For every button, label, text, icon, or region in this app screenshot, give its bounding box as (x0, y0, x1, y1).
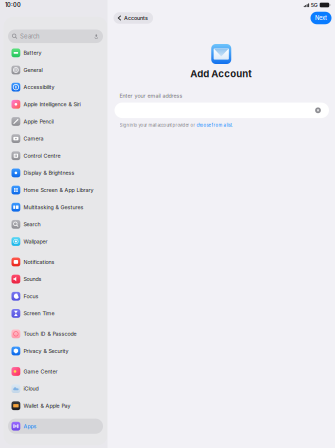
staticText: Next (315, 14, 327, 21)
staticText: Apps (23, 423, 36, 429)
button[interactable]: Search (8, 30, 103, 43)
button[interactable]: Home Screen & App Library (8, 182, 103, 198)
button[interactable]: Accessibility (8, 79, 103, 95)
button[interactable]: Sounds (8, 271, 103, 287)
staticText: Touch ID & Passcode (23, 331, 76, 337)
staticText: Apple Pencil (23, 118, 53, 125)
button[interactable]: Wallpaper (8, 234, 103, 249)
staticText: choose from a list. (196, 123, 232, 128)
staticText: General (23, 67, 42, 73)
button[interactable]: Next (310, 12, 331, 24)
button[interactable]: Touch ID & Passcode (8, 326, 103, 341)
button[interactable]: Clear text (314, 106, 322, 114)
staticText: Wallpaper (23, 238, 47, 245)
button[interactable]: Notifications (8, 254, 103, 270)
button[interactable]: Search (8, 217, 103, 232)
staticText: Search (20, 33, 40, 40)
staticText: Focus (23, 293, 38, 299)
staticText: Apple Intelligence & Siri (23, 101, 80, 108)
staticText: Enter your email address (119, 93, 182, 99)
button[interactable]: Focus (8, 289, 103, 304)
staticText: Wallet & Apple Pay (23, 402, 70, 409)
button[interactable]: Apple Intelligence & Siri (8, 97, 103, 112)
staticText: Accessibility (23, 84, 54, 90)
button[interactable]: iCloud (8, 381, 103, 396)
button[interactable]: Game Center (8, 364, 103, 379)
staticText: Home Screen & App Library (23, 187, 93, 193)
staticText: Add Account (190, 68, 252, 80)
staticText: Camera (23, 135, 43, 142)
staticText: 5G (311, 2, 318, 8)
button[interactable]: Battery (8, 45, 103, 60)
button[interactable]: Control Centre (8, 148, 103, 163)
staticText: Display & Brightness (23, 170, 74, 176)
button[interactable]: Camera (8, 131, 103, 146)
staticText: Screen Time (23, 310, 54, 317)
staticText: Sign in to your mail account provider or (119, 123, 196, 128)
staticText: iCloud (23, 385, 38, 392)
button[interactable]: Privacy & Security (8, 343, 103, 359)
button[interactable]: choose from a list. (196, 123, 232, 128)
staticText: Accounts (124, 15, 148, 21)
staticText: Sounds (23, 276, 41, 282)
staticText: 10:00 (5, 2, 21, 8)
staticText: Battery (23, 50, 41, 56)
button[interactable]: Screen Time (8, 306, 103, 321)
button[interactable]: Apps (8, 419, 103, 434)
button[interactable]: Display & Brightness (8, 165, 103, 180)
button[interactable]: General (8, 62, 103, 78)
button[interactable]: Wallet & Apple Pay (8, 398, 103, 413)
button[interactable]: Multitasking & Gestures (8, 200, 103, 215)
staticText: Search (23, 221, 40, 228)
staticText: Multitasking & Gestures (23, 204, 83, 210)
button[interactable]: Accounts (113, 12, 153, 24)
staticText: Game Center (23, 368, 57, 375)
button[interactable]: Apple Pencil (8, 114, 103, 129)
staticText: Notifications (23, 259, 54, 265)
staticText: Control Centre (23, 152, 60, 159)
staticText: Privacy & Security (23, 348, 68, 354)
